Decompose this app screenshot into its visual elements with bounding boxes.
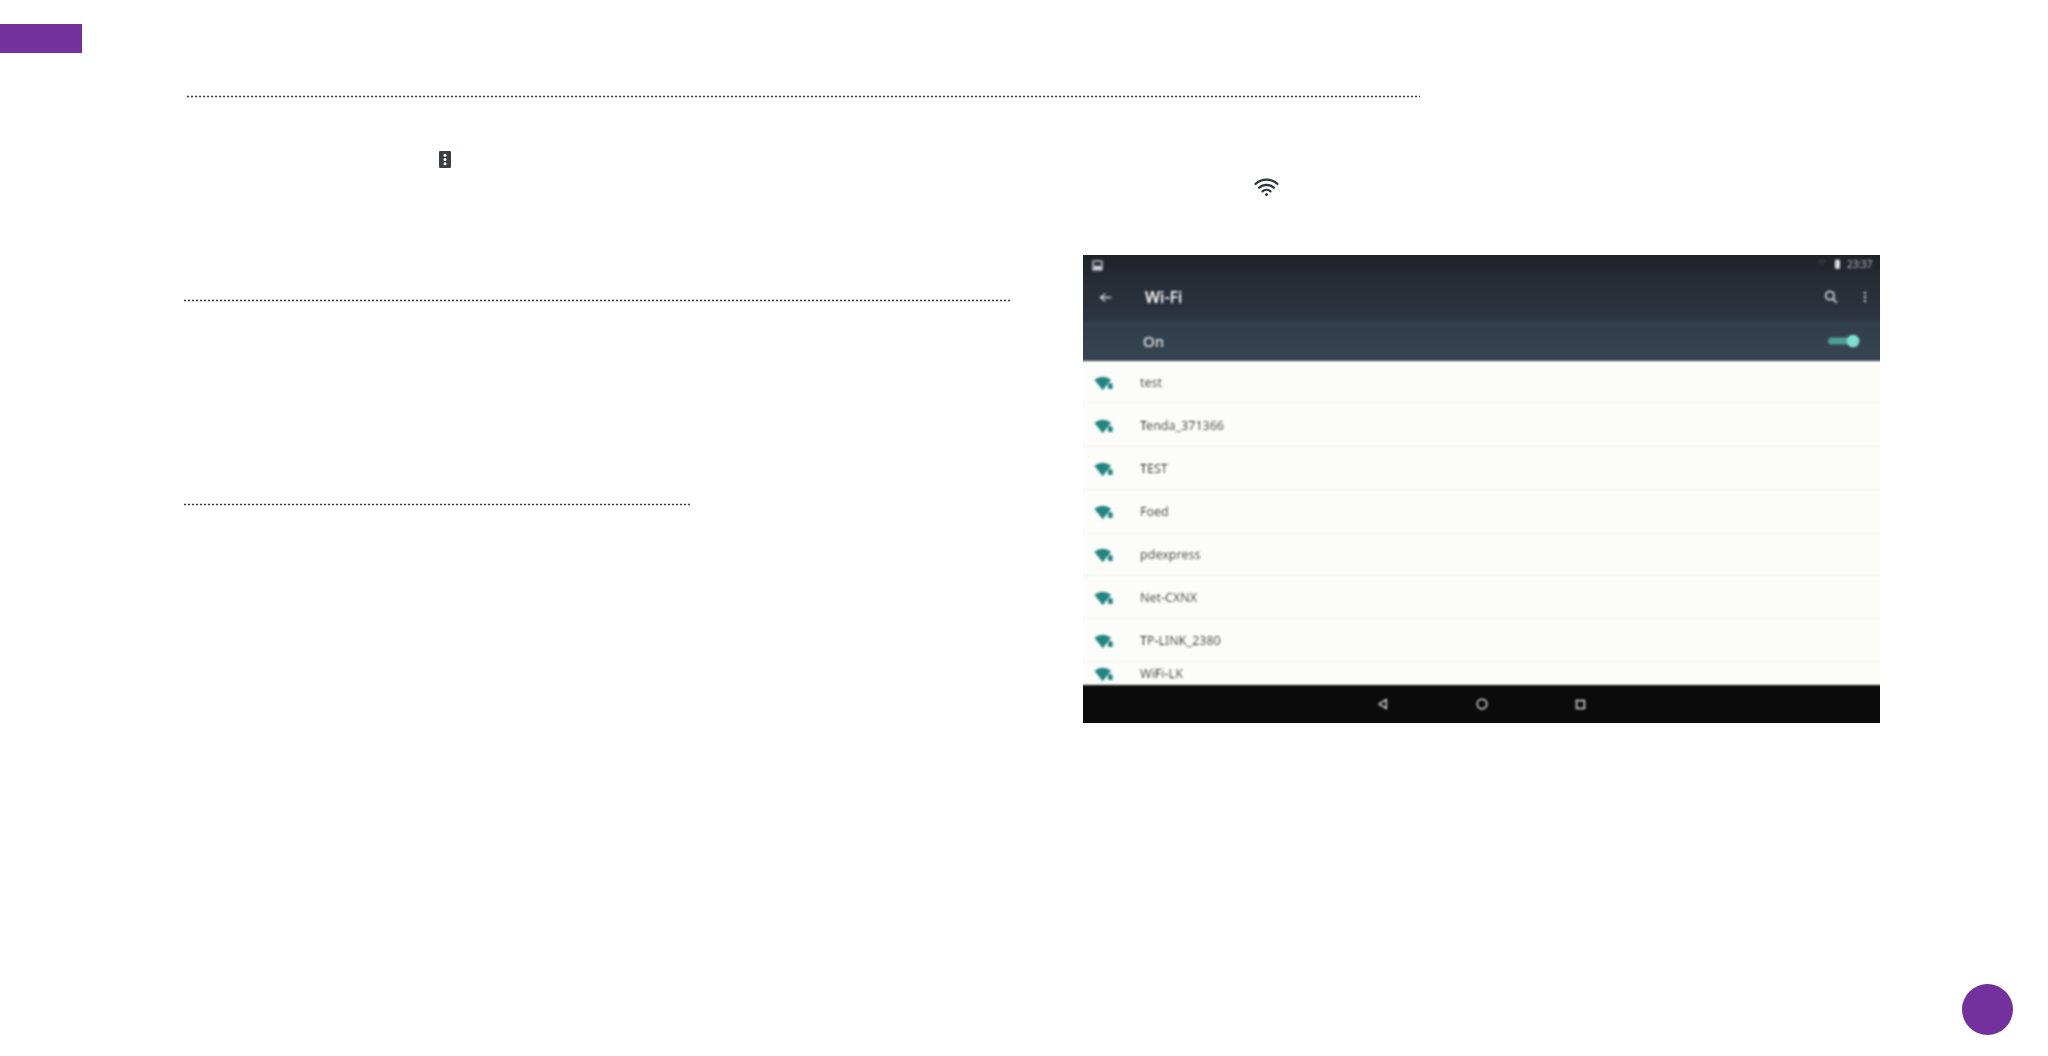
staticText: 23:37 — [1847, 257, 1873, 271]
button[interactable]: More options — [1850, 273, 1880, 321]
button[interactable]: Wi-Fi — [1255, 177, 1278, 197]
button[interactable]: More options — [439, 151, 451, 168]
staticText: test — [1140, 374, 1163, 391]
button[interactable]: Net-CXNX — [1083, 576, 1880, 619]
button[interactable]: Action — [1962, 984, 2013, 1035]
staticText: pdexpress — [1140, 546, 1201, 563]
button[interactable]: Tenda_371366 — [1083, 404, 1880, 447]
staticText: Tenda_371366 — [1140, 417, 1225, 434]
button[interactable]: WiFi-LK — [1083, 662, 1880, 685]
button[interactable]: test — [1083, 361, 1880, 404]
button[interactable]: Toggle Wi-Fi — [1828, 332, 1861, 350]
staticText: Wi-Fi — [1145, 286, 1183, 308]
staticText: TEST — [1140, 460, 1168, 477]
staticText: TP-LINK_2380 — [1140, 632, 1221, 649]
button[interactable]: Home — [1432, 685, 1531, 723]
button[interactable]: Back — [1333, 685, 1432, 723]
button[interactable]: pdexpress — [1083, 533, 1880, 576]
button[interactable]: Back — [1083, 273, 1127, 321]
staticText: On — [1143, 331, 1164, 351]
button[interactable]: Search — [1812, 273, 1850, 321]
button[interactable]: Recents — [1531, 685, 1630, 723]
staticText: Net-CXNX — [1140, 589, 1198, 606]
button[interactable]: TEST — [1083, 447, 1880, 490]
button[interactable]: Foed — [1083, 490, 1880, 533]
staticText: WiFi-LK — [1140, 665, 1183, 682]
button[interactable]: TP-LINK_2380 — [1083, 619, 1880, 662]
staticText: Foed — [1140, 503, 1169, 520]
